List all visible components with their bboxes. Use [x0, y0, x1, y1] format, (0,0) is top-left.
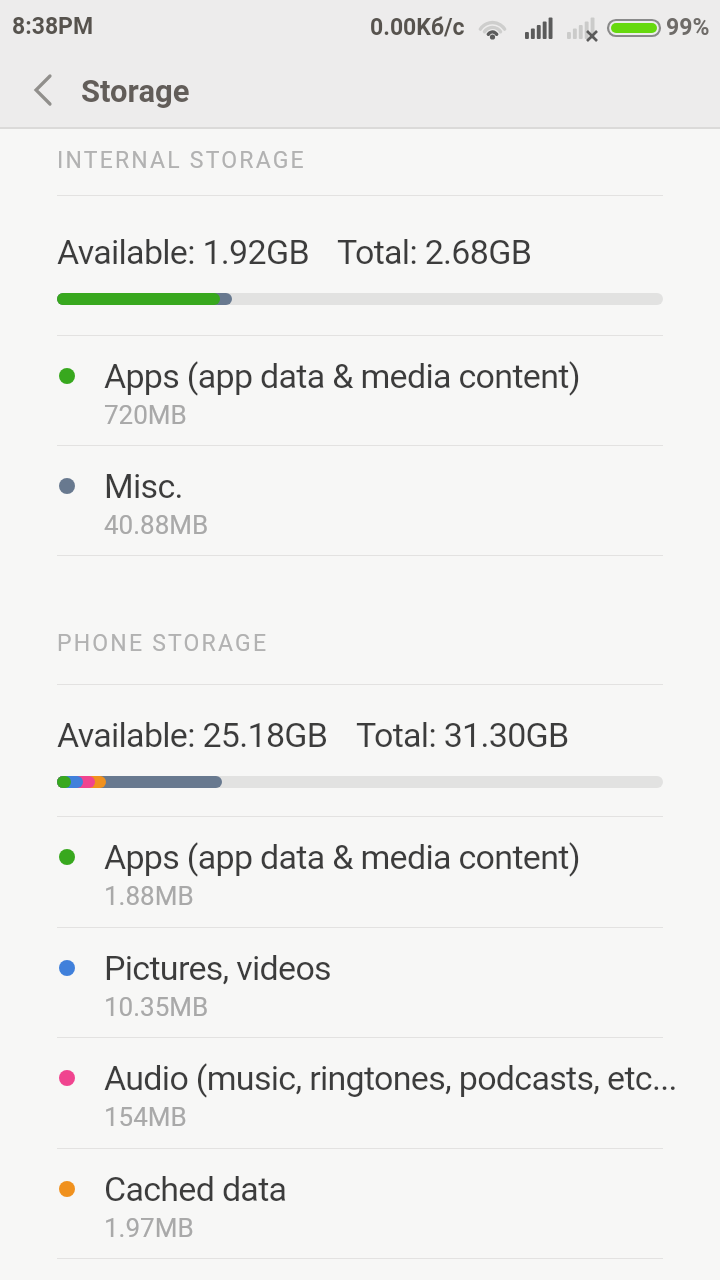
staticText: 10.35MB [104, 992, 209, 1022]
staticText: Total: 31.30GB [356, 715, 569, 755]
staticText: Total: 2.68GB [337, 232, 532, 272]
staticText: 154MB [104, 1102, 187, 1132]
button[interactable] [28, 74, 60, 106]
staticText: INTERNAL STORAGE [57, 147, 306, 174]
staticText: Pictures, videos [104, 948, 331, 988]
staticText: 1.88MB [104, 881, 194, 911]
staticText: 720MB [104, 400, 187, 430]
staticText: PHONE STORAGE [57, 630, 269, 657]
staticText: 1.97MB [104, 1213, 194, 1243]
staticText: Available: 1.92GB [57, 232, 309, 272]
staticText: 8:38PM [12, 13, 94, 40]
staticText: 40.88MB [104, 510, 209, 540]
staticText: Cached data [104, 1169, 287, 1209]
button[interactable] [0, 816, 720, 926]
button[interactable] [0, 445, 720, 555]
staticText: Audio (music, ringtones, podcasts, etc..… [104, 1058, 677, 1098]
staticText: Available: 25.18GB [57, 715, 328, 755]
button[interactable] [0, 1037, 720, 1147]
button[interactable] [0, 1148, 720, 1258]
staticText: 0.00Kб/c [370, 14, 465, 41]
staticText: Apps (app data & media content) [104, 837, 580, 877]
staticText: Storage [81, 73, 190, 109]
staticText: Apps (app data & media content) [104, 356, 580, 396]
button[interactable] [0, 927, 720, 1037]
button[interactable] [0, 335, 720, 445]
staticText: Misc. [104, 466, 183, 506]
staticText: 99% [666, 14, 710, 41]
